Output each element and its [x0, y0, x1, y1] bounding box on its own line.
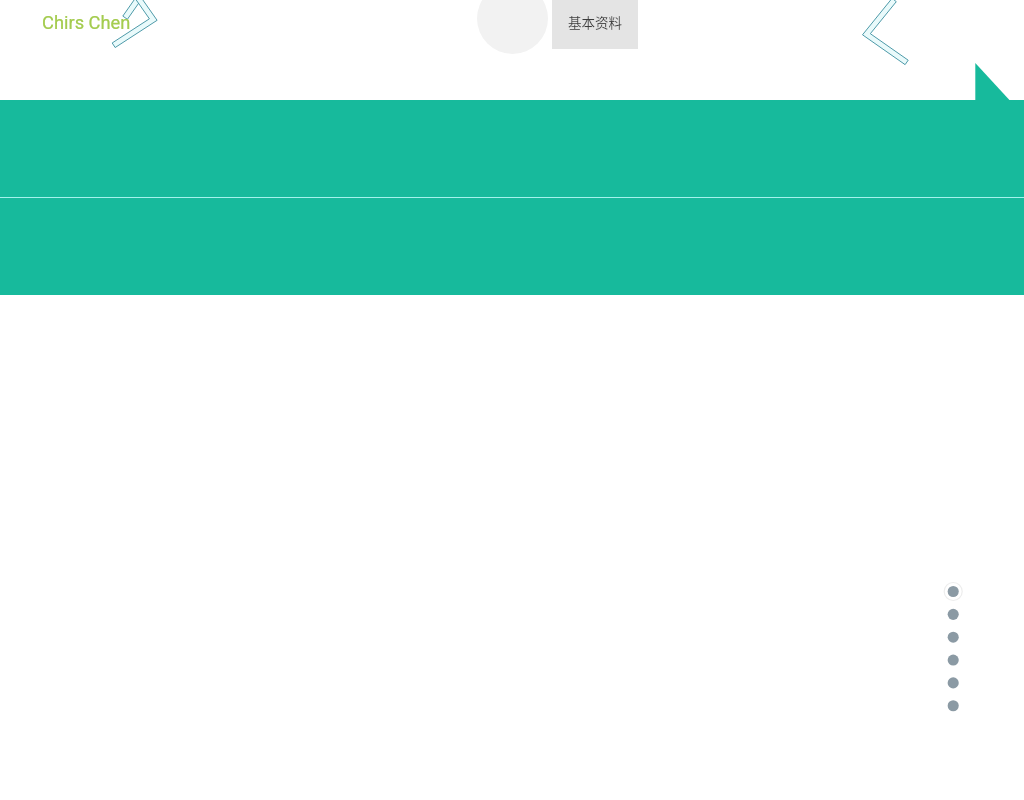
button[interactable]: Page 3: [944, 628, 962, 646]
button[interactable]: Page 2: [944, 605, 962, 623]
button[interactable]: Page 5: [944, 674, 962, 692]
button[interactable]: 基本资料: [552, 0, 638, 49]
button[interactable]: Page 4: [944, 651, 962, 669]
button[interactable]: Page 6: [944, 697, 962, 715]
staticText: Chirs Chen: [42, 12, 131, 33]
button[interactable]: Chirs Chen: [42, 12, 131, 33]
button[interactable]: Avatar: [477, 0, 548, 54]
staticText: 基本资料: [568, 12, 622, 32]
button[interactable]: Page 1: [944, 583, 962, 601]
